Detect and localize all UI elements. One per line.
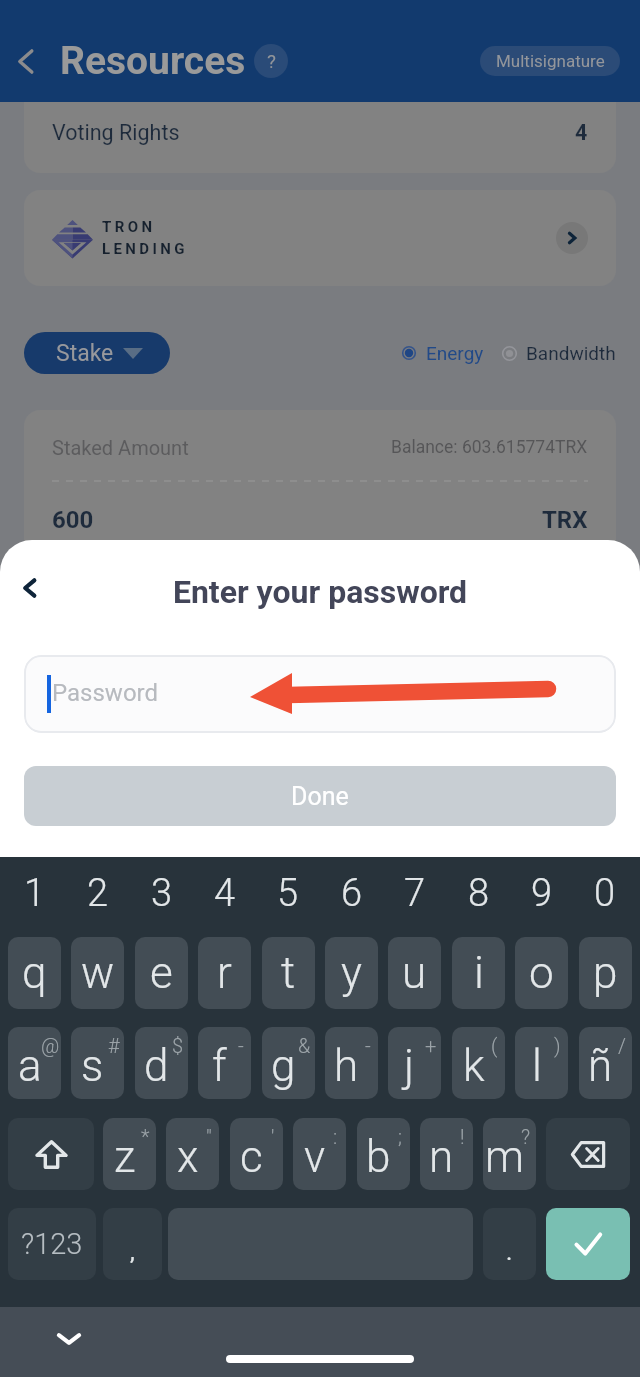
button[interactable]: Multisignature [480, 46, 620, 76]
staticText: i [474, 947, 484, 999]
staticText: & [298, 1034, 311, 1057]
staticText: m [485, 1131, 525, 1183]
button[interactable]: s [71, 1027, 124, 1099]
button[interactable]: Hide keyboard [45, 1315, 93, 1363]
staticText: t [281, 947, 296, 999]
staticText: - [365, 1034, 371, 1057]
staticText: LENDING [102, 240, 188, 258]
staticText: z [114, 1131, 136, 1183]
staticText: Done [291, 782, 349, 811]
staticText: c [240, 1131, 263, 1183]
staticText: g [271, 1040, 296, 1092]
button[interactable]: n [420, 1118, 473, 1190]
staticText: Stake [56, 340, 114, 367]
button[interactable]: 3 [136, 863, 188, 923]
button[interactable]: 0 [579, 863, 631, 923]
button[interactable]: Help [254, 44, 288, 78]
staticText: 8 [468, 871, 490, 916]
button[interactable]: z [103, 1118, 156, 1190]
button[interactable]: 2 [72, 863, 124, 923]
staticText: : [333, 1125, 338, 1148]
button[interactable]: g [262, 1027, 315, 1099]
button[interactable]: Enter [546, 1208, 630, 1280]
staticText: - [238, 1034, 244, 1057]
button[interactable]: Shift [8, 1118, 94, 1190]
staticText: ' [271, 1125, 275, 1148]
staticText: Voting Rights [52, 120, 180, 145]
staticText: p [593, 947, 618, 999]
staticText: + [425, 1034, 437, 1057]
button[interactable]: m [483, 1118, 536, 1190]
button[interactable]: 8 [453, 863, 505, 923]
button[interactable]: h [325, 1027, 378, 1099]
staticText: ñ [588, 1040, 613, 1092]
button[interactable]: Backspace [546, 1118, 630, 1190]
staticText: / [618, 1034, 626, 1057]
button[interactable]: t [262, 937, 315, 1009]
staticText: Resources [60, 38, 246, 84]
button[interactable]: p [579, 937, 632, 1009]
button[interactable]: i [452, 937, 505, 1009]
staticText: TRX [542, 506, 588, 534]
button[interactable]: , [103, 1208, 162, 1280]
staticText: a [18, 1040, 42, 1092]
button[interactable]: ñ [579, 1027, 632, 1099]
button[interactable]: v [293, 1118, 346, 1190]
staticText: , [130, 1238, 135, 1266]
button[interactable]: o [515, 937, 568, 1009]
button[interactable]: Bandwidth [502, 342, 616, 364]
button[interactable]: . [483, 1208, 536, 1280]
staticText: ; [398, 1125, 402, 1148]
staticText: 3 [151, 871, 173, 916]
button[interactable]: q [8, 937, 61, 1009]
button[interactable]: Back [8, 566, 52, 610]
button[interactable]: r [198, 937, 251, 1009]
button[interactable]: c [230, 1118, 283, 1190]
button[interactable]: e [135, 937, 188, 1009]
staticText: . [506, 1238, 513, 1266]
staticText: k [463, 1040, 485, 1092]
button[interactable]: x [166, 1118, 219, 1190]
button[interactable]: 4 [199, 863, 251, 923]
button[interactable]: 5 [262, 863, 314, 923]
button[interactable]: Back [2, 38, 48, 84]
button[interactable]: 1 [9, 863, 61, 923]
staticText: ( [491, 1034, 498, 1057]
button[interactable]: l [515, 1027, 568, 1099]
staticText: u [402, 947, 427, 999]
staticText: 0 [594, 871, 616, 916]
button[interactable]: 7 [389, 863, 441, 923]
button[interactable]: y [325, 937, 378, 1009]
staticText: e [150, 947, 173, 999]
button[interactable]: a [8, 1027, 61, 1099]
button[interactable]: d [135, 1027, 188, 1099]
button[interactable]: k [452, 1027, 505, 1099]
button[interactable]: f [198, 1027, 251, 1099]
staticText: j [404, 1040, 415, 1092]
button[interactable]: Energy [402, 342, 484, 364]
staticText: Balance: 603.615774TRX [391, 437, 588, 458]
button[interactable]: 9 [516, 863, 568, 923]
button[interactable]: w [71, 937, 124, 1009]
button[interactable]: Password [24, 655, 616, 733]
staticText: x [177, 1131, 199, 1183]
button[interactable]: b [357, 1118, 410, 1190]
staticText: s [81, 1040, 104, 1092]
staticText: l [532, 1040, 542, 1092]
staticText: Staked Amount [52, 436, 189, 459]
staticText: f [212, 1040, 227, 1092]
staticText: 5 [277, 871, 299, 916]
staticText: v [304, 1131, 326, 1183]
staticText: 4 [575, 120, 588, 145]
staticText: 1 [24, 871, 46, 916]
staticText: @ [41, 1034, 60, 1057]
button[interactable]: j [388, 1027, 441, 1099]
button[interactable]: Stake [24, 332, 170, 374]
button[interactable]: 6 [326, 863, 378, 923]
button[interactable]: Done [24, 766, 616, 826]
button[interactable]: ?123 [8, 1208, 96, 1280]
button[interactable]: TRON [24, 190, 616, 286]
button[interactable]: u [388, 937, 441, 1009]
staticText: $ [172, 1034, 184, 1057]
